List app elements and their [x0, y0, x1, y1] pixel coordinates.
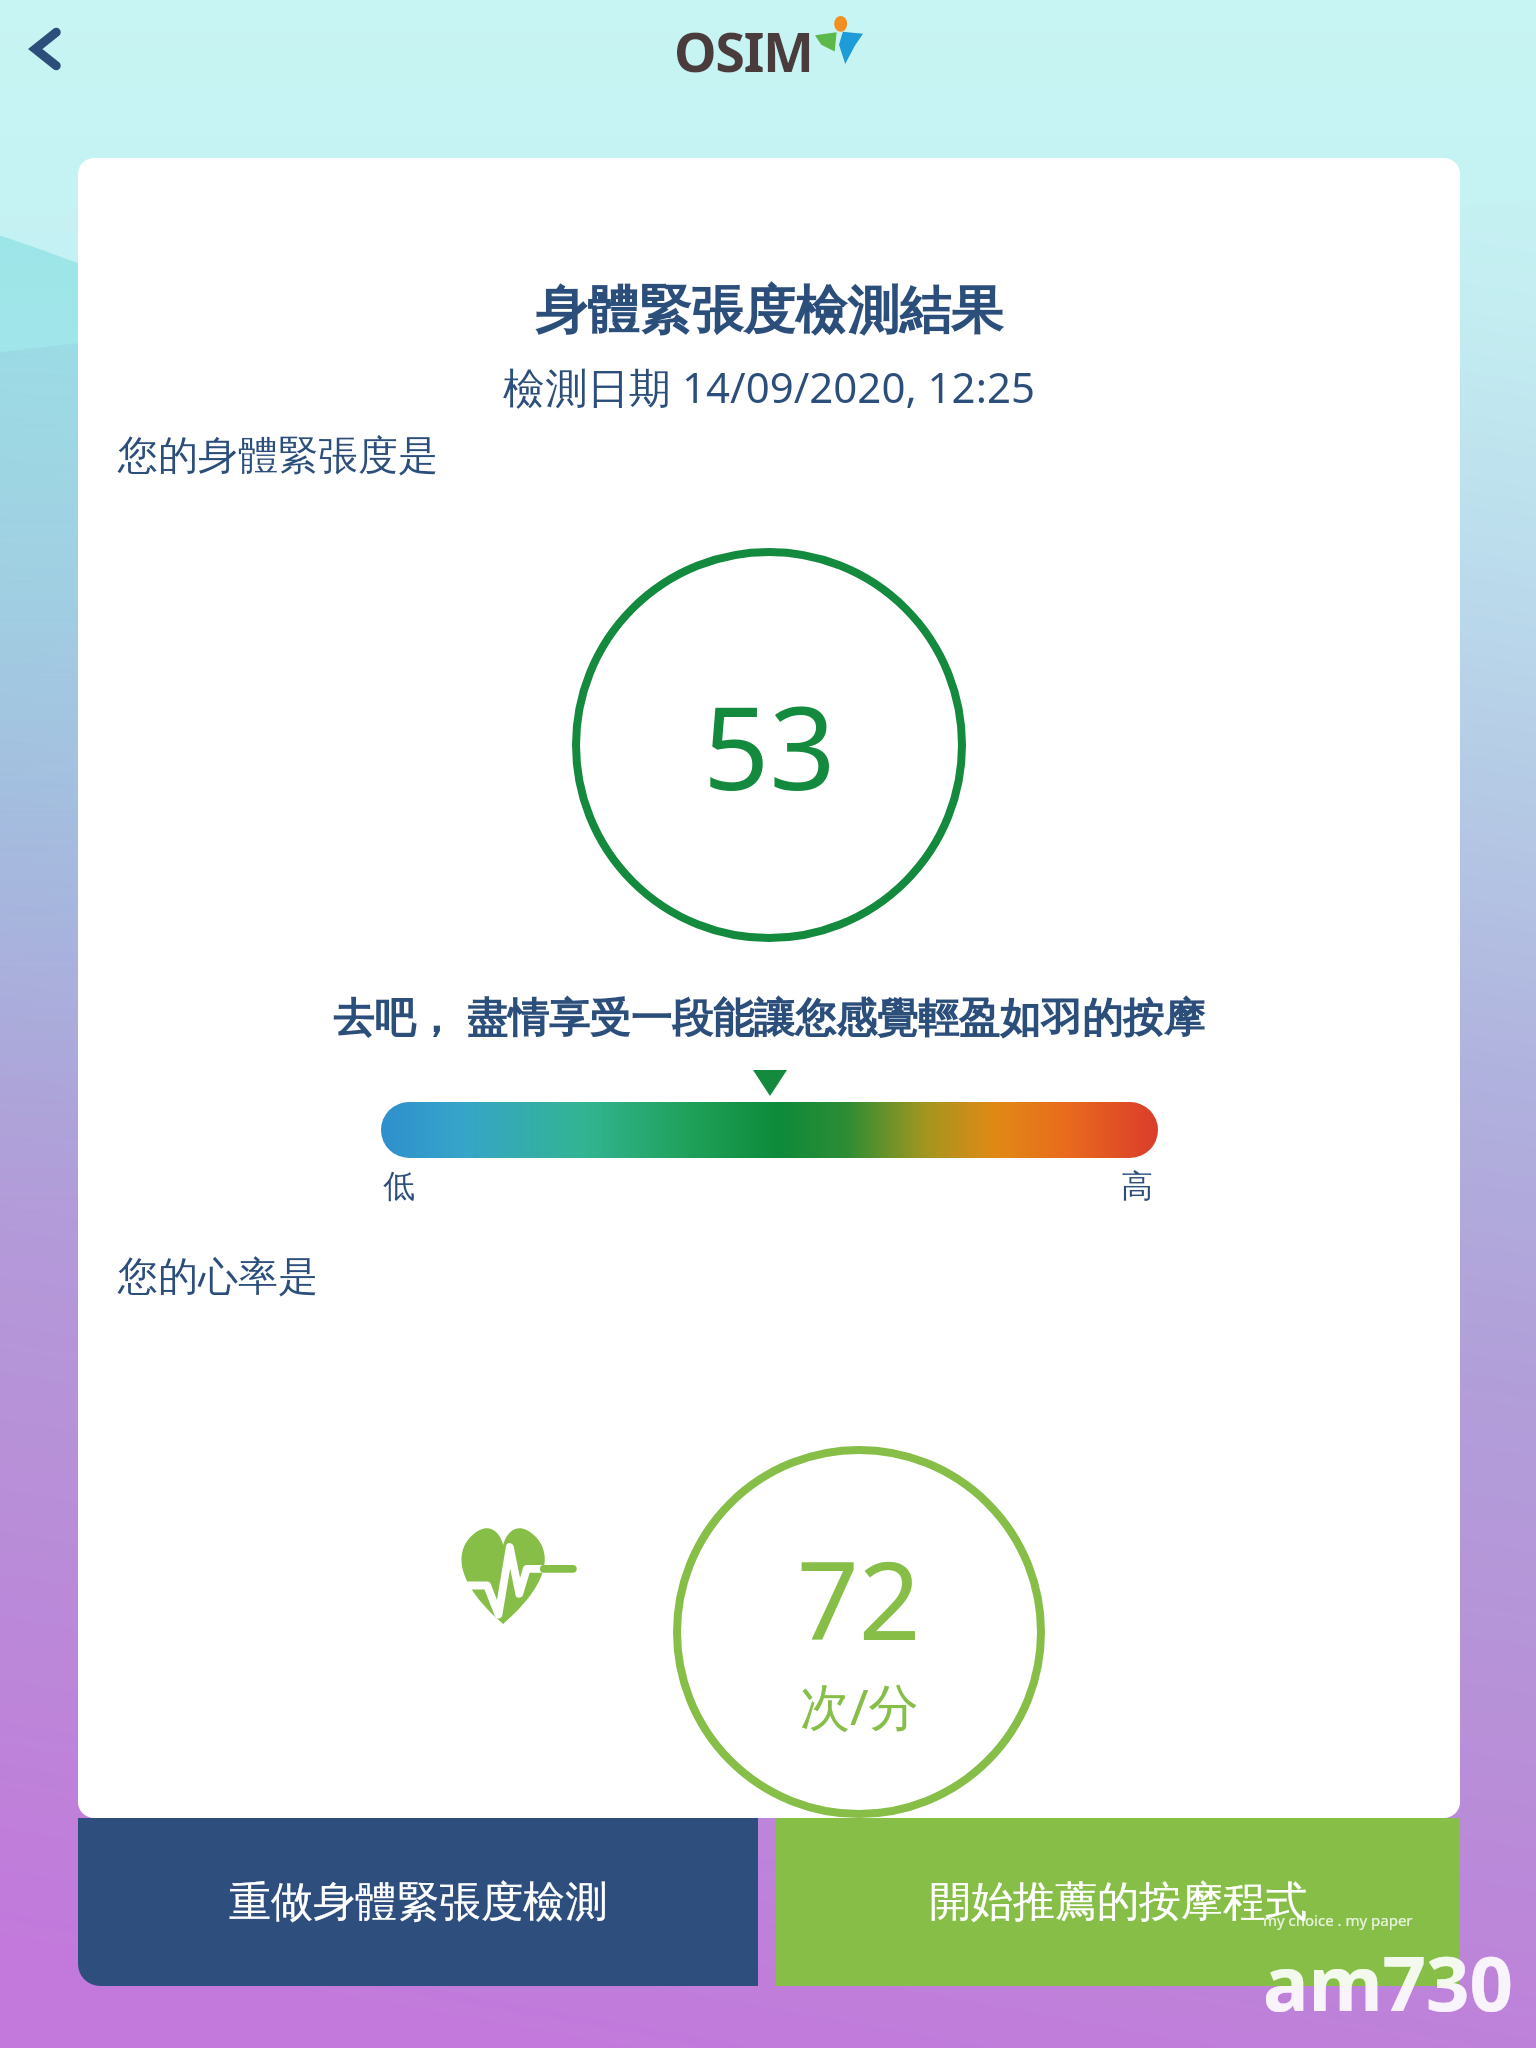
staticText: OSIM [674, 14, 813, 86]
staticText: 身體緊張度檢測結果 [78, 278, 1460, 344]
button[interactable]: 重做身體緊張度檢測 [78, 1818, 758, 1986]
staticText: 您的身體緊張度是 [118, 430, 438, 480]
button[interactable]: Back [4, 6, 90, 92]
staticText: 重做身體緊張度檢測 [229, 1876, 607, 1929]
staticText: 低 [383, 1166, 415, 1206]
staticText: 檢測日期 14/09/2020, 12:25 [78, 358, 1460, 415]
staticText: 去吧， 盡情享受一段能讓您感覺輕盈如羽的按摩 [78, 988, 1460, 1044]
staticText: 次/分 [800, 1672, 919, 1740]
staticText: 53 [703, 666, 836, 824]
button[interactable]: 開始推薦的按摩程式 [776, 1818, 1460, 1986]
staticText: 高 [1121, 1166, 1153, 1206]
staticText: 開始推薦的按摩程式 [929, 1876, 1307, 1929]
staticText: my choice . my paper [1263, 1910, 1413, 1930]
staticText: 72 [797, 1525, 921, 1672]
staticText: am730 [1263, 1930, 1514, 2034]
staticText: 您的心率是 [118, 1251, 318, 1301]
